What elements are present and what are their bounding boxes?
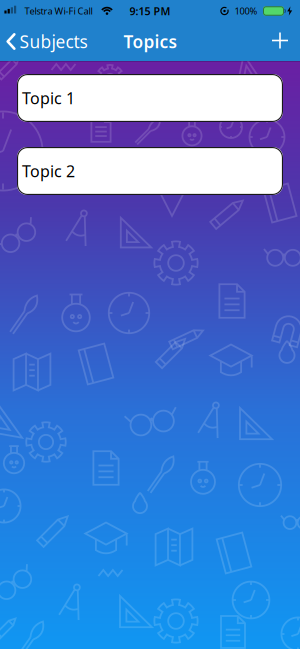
- staticText: 100%: [234, 5, 257, 17]
- button[interactable]: Topic 1: [17, 74, 283, 122]
- staticText: Topic 2: [22, 160, 75, 182]
- staticText: Topic 1: [22, 87, 75, 109]
- button[interactable]: Subjects: [6, 30, 87, 53]
- button[interactable]: Add Topic: [269, 30, 290, 51]
- button[interactable]: Topic 2: [17, 147, 283, 195]
- staticText: Topics: [123, 30, 177, 53]
- staticText: 9:15 PM: [129, 4, 170, 18]
- staticText: Telstra Wi-Fi Call: [24, 5, 92, 17]
- staticText: Subjects: [19, 30, 87, 53]
